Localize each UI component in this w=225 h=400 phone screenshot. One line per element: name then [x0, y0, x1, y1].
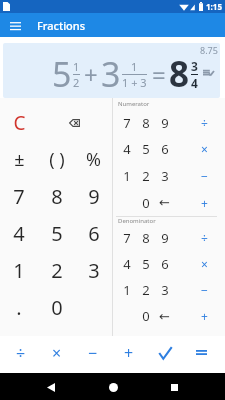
button[interactable]: 0	[136, 303, 155, 329]
button[interactable]: ( )	[38, 141, 75, 178]
staticText: 8.75	[200, 44, 218, 56]
staticText: ÷	[201, 230, 208, 246]
button[interactable]: 6	[155, 251, 174, 277]
button[interactable]: 5	[136, 136, 155, 162]
button[interactable]: −	[75, 336, 111, 369]
staticText: Denominator	[118, 217, 156, 224]
button[interactable]: 9	[155, 110, 174, 136]
staticText: %	[86, 147, 101, 172]
staticText: ×	[201, 256, 208, 272]
staticText: 6	[161, 140, 169, 158]
staticText: 9	[161, 114, 169, 132]
button[interactable]: 6	[75, 215, 112, 252]
button[interactable]: 4	[0, 215, 38, 252]
button[interactable]: 2	[38, 252, 75, 289]
button[interactable]: 3	[155, 277, 174, 303]
button[interactable]: +	[111, 336, 147, 369]
button[interactable]: 0	[136, 189, 155, 216]
staticText: 4	[191, 75, 198, 91]
staticText: 4	[13, 220, 25, 247]
button[interactable]: Back	[40, 376, 62, 398]
button[interactable]: 1	[117, 162, 136, 189]
staticText: 3	[161, 167, 169, 185]
staticText: −	[88, 342, 98, 364]
button[interactable]: +	[187, 303, 221, 329]
staticText: ←	[159, 195, 170, 210]
button[interactable]: ×	[39, 336, 75, 369]
button[interactable]: 7	[0, 178, 38, 215]
staticText: 8	[142, 229, 150, 247]
button[interactable]: 4	[117, 251, 136, 277]
staticText: +	[84, 58, 98, 91]
button[interactable]: 9	[155, 224, 174, 251]
staticText: 5	[51, 220, 63, 247]
button[interactable]: 8	[38, 178, 75, 215]
staticText: −	[201, 282, 208, 298]
button[interactable]: 5	[38, 215, 75, 252]
staticText: 5	[52, 51, 72, 97]
staticText: 2	[51, 257, 63, 284]
staticText: ÷	[201, 115, 208, 131]
button[interactable]: 3	[75, 252, 112, 289]
staticText: ×	[52, 342, 62, 364]
staticText: 3	[88, 257, 100, 284]
button[interactable]: 2	[136, 162, 155, 189]
button[interactable]: 8	[136, 110, 155, 136]
button[interactable]: ←	[155, 303, 174, 329]
button[interactable]: ±	[0, 141, 38, 178]
button[interactable]: 2	[136, 277, 155, 303]
button[interactable]: −	[187, 277, 221, 303]
staticText: ←	[159, 309, 170, 324]
button[interactable]: ×	[187, 251, 221, 277]
staticText: 0	[142, 307, 150, 325]
button[interactable]: Backspace	[69, 104, 80, 141]
staticText: .	[16, 294, 22, 321]
button[interactable]: 8	[136, 224, 155, 251]
button[interactable]: 3	[155, 162, 174, 189]
staticText: 2	[142, 167, 150, 185]
staticText: 3	[161, 281, 169, 299]
button[interactable]: Recents	[163, 376, 185, 398]
button[interactable]: %	[75, 141, 112, 178]
button[interactable]: C	[0, 104, 38, 141]
staticText: 7	[123, 229, 131, 247]
staticText: 9	[161, 229, 169, 247]
staticText: Numerator	[118, 100, 150, 108]
staticText: 1	[131, 59, 138, 74]
staticText: +	[201, 195, 208, 211]
button[interactable]: −	[187, 162, 221, 189]
button[interactable]: 6	[155, 136, 174, 162]
staticText: ÷	[16, 342, 26, 364]
button[interactable]: Equals	[183, 336, 219, 369]
button[interactable]: ÷	[2, 336, 39, 369]
button[interactable]: ←	[155, 189, 174, 216]
staticText: 2	[142, 281, 150, 299]
staticText: 1	[123, 167, 131, 185]
button[interactable]: 1	[0, 252, 38, 289]
staticText: +	[201, 308, 208, 324]
button[interactable]: ×	[187, 136, 221, 162]
button[interactable]: Menu	[0, 13, 30, 37]
staticText: ( )	[49, 147, 65, 172]
button[interactable]: 7	[117, 224, 136, 251]
button[interactable]: +	[187, 189, 221, 216]
button[interactable]: 9	[75, 178, 112, 215]
button[interactable]: 4	[117, 136, 136, 162]
button[interactable]: History	[202, 67, 214, 79]
staticText: 5	[142, 140, 150, 158]
button[interactable]: 7	[117, 110, 136, 136]
button[interactable]: 1	[117, 277, 136, 303]
button[interactable]: 5	[136, 251, 155, 277]
button[interactable]: ÷	[187, 224, 221, 251]
staticText: 1	[73, 59, 80, 74]
staticText: 2	[73, 75, 80, 90]
staticText: 7	[123, 114, 131, 132]
button[interactable]: ÷	[187, 110, 221, 136]
staticText: 1	[123, 281, 131, 299]
staticText: ×	[201, 141, 208, 157]
button[interactable]: 0	[38, 289, 75, 326]
staticText: 4	[123, 255, 131, 273]
button[interactable]: Home	[102, 376, 124, 398]
button[interactable]: Apply	[147, 336, 183, 369]
button[interactable]: .	[0, 289, 38, 326]
